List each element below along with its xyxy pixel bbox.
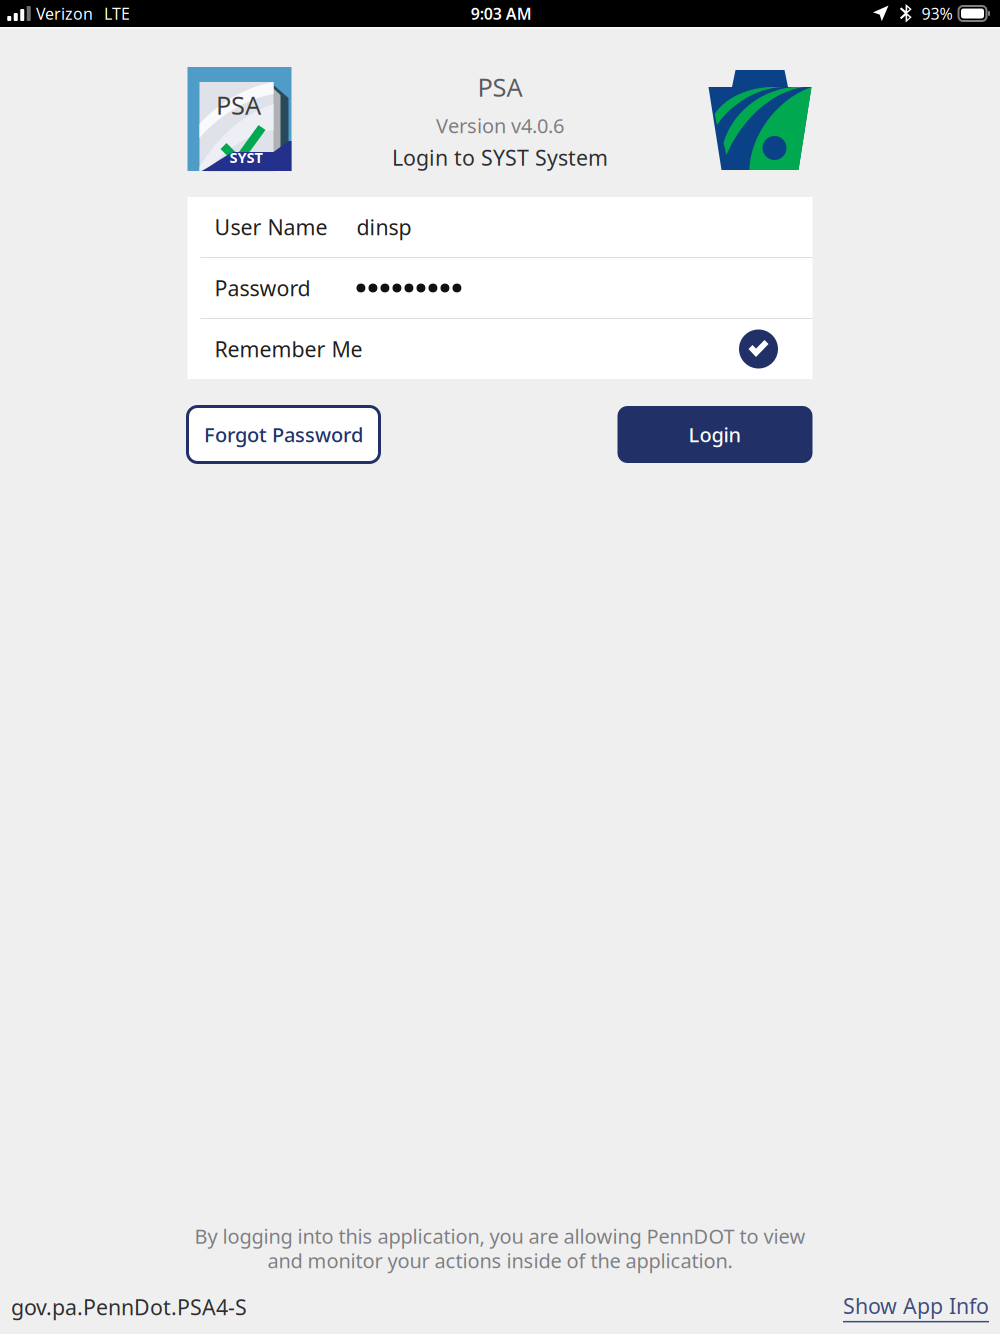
staticText: Login to SYST System bbox=[392, 143, 608, 172]
button[interactable]: Show App Info bbox=[843, 1292, 989, 1322]
staticText: User Name bbox=[214, 213, 327, 241]
staticText: Verizon bbox=[36, 3, 93, 24]
staticText: By logging into this application, you ar… bbox=[194, 1223, 805, 1249]
staticText: PSA bbox=[477, 70, 522, 104]
staticText: Login bbox=[688, 421, 741, 448]
staticText: 9:03 AM bbox=[471, 3, 532, 24]
staticText: LTE bbox=[104, 3, 130, 24]
staticText: 93% bbox=[921, 3, 952, 24]
staticText: SYST bbox=[229, 147, 262, 167]
staticText: and monitor your actions inside of the a… bbox=[267, 1247, 732, 1274]
button[interactable]: Remember Me bbox=[729, 319, 787, 379]
staticText: Password bbox=[214, 274, 310, 302]
staticText: dinsp bbox=[356, 213, 411, 241]
staticText: gov.pa.PennDot.PSA4-S bbox=[11, 1293, 247, 1321]
button[interactable]: Login bbox=[617, 406, 812, 463]
staticText: Version v4.0.6 bbox=[436, 112, 564, 139]
staticText: Show App Info bbox=[843, 1292, 989, 1320]
staticText: Remember Me bbox=[214, 335, 362, 363]
staticText: PSA bbox=[216, 88, 261, 122]
staticText: Forgot Password bbox=[204, 421, 363, 448]
button[interactable]: Forgot Password bbox=[187, 406, 379, 462]
